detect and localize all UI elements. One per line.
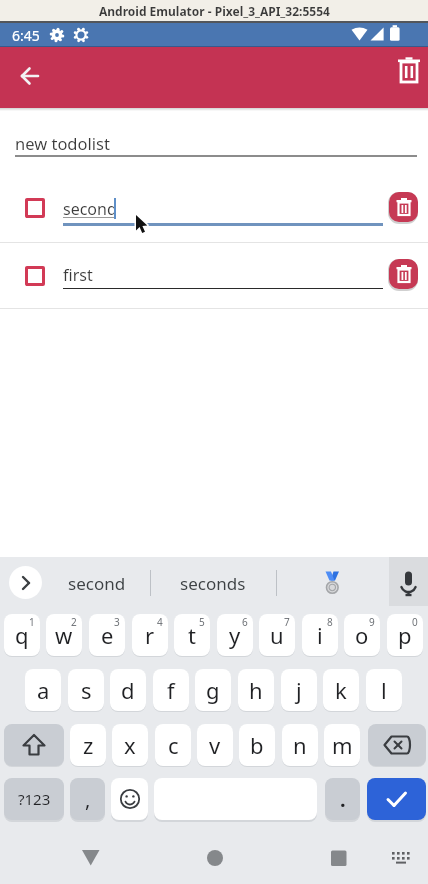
button[interactable]: j (281, 669, 317, 711)
button[interactable]: v (197, 724, 233, 766)
button[interactable]: u (259, 614, 295, 656)
staticText: e (101, 620, 114, 650)
button[interactable] (367, 778, 426, 820)
button[interactable]: l (366, 669, 402, 711)
staticText: ?123 (18, 789, 51, 809)
staticText: . (340, 786, 346, 813)
staticText: i (317, 620, 323, 650)
button[interactable] (389, 192, 418, 222)
staticText: a (37, 675, 50, 705)
staticText: seconds (180, 572, 246, 595)
staticText: u (270, 620, 284, 650)
staticText: t (188, 620, 196, 650)
staticText: second (63, 198, 117, 220)
button[interactable]: k (323, 669, 359, 711)
staticText: q (15, 620, 29, 650)
staticText: 3 (114, 615, 120, 629)
staticText: first (63, 264, 93, 286)
staticText: b (250, 730, 264, 760)
button[interactable] (395, 56, 423, 84)
staticText: 6:45 (12, 26, 40, 45)
staticText: z (83, 730, 94, 760)
staticText: m (332, 730, 353, 760)
button[interactable]: . (325, 778, 360, 820)
staticText: 2 (71, 615, 77, 629)
staticText: v (209, 730, 221, 760)
button[interactable] (398, 568, 419, 596)
button[interactable]: w (46, 614, 82, 656)
button[interactable]: e (89, 614, 125, 656)
staticText: o (355, 620, 369, 650)
staticText: x (124, 730, 136, 760)
button[interactable] (75, 842, 107, 874)
staticText: g (206, 675, 220, 705)
staticText: j (296, 675, 302, 705)
button[interactable]: f (153, 669, 189, 711)
button[interactable]: x (112, 724, 148, 766)
staticText: Android Emulator - Pixel_3_API_32:5554 (99, 3, 330, 19)
staticText: d (121, 675, 135, 705)
button[interactable]: , (70, 778, 105, 820)
staticText: w (55, 620, 73, 650)
staticText: r (145, 620, 155, 650)
button[interactable]: z (70, 724, 106, 766)
staticText: y (229, 620, 241, 650)
button[interactable] (199, 842, 231, 874)
button[interactable]: i (302, 614, 338, 656)
staticText: 0 (412, 615, 418, 629)
button[interactable]: y (217, 614, 253, 656)
button[interactable] (9, 566, 42, 599)
staticText: 5 (199, 615, 205, 629)
button[interactable] (4, 724, 64, 766)
staticText: 7 (284, 615, 290, 629)
button[interactable] (25, 266, 45, 286)
button[interactable]: d (110, 669, 146, 711)
button[interactable]: n (282, 724, 318, 766)
button[interactable] (25, 198, 45, 218)
staticText: h (249, 675, 263, 705)
staticText: , (85, 786, 91, 813)
button[interactable] (387, 845, 415, 871)
button[interactable]: c (155, 724, 191, 766)
button[interactable] (389, 259, 418, 289)
button[interactable]: p (387, 614, 423, 656)
staticText: second (68, 572, 126, 595)
button[interactable]: t (174, 614, 210, 656)
button[interactable]: q (4, 614, 40, 656)
button[interactable] (13, 60, 45, 92)
button[interactable] (111, 778, 148, 820)
staticText: 9 (369, 615, 375, 629)
staticText: 1 (29, 615, 35, 629)
button[interactable] (368, 724, 426, 766)
button[interactable]: h (238, 669, 274, 711)
button[interactable]: ?123 (4, 778, 64, 820)
staticText: 4 (157, 615, 163, 629)
button[interactable]: r (132, 614, 168, 656)
button[interactable]: m (324, 724, 360, 766)
button[interactable]: g (195, 669, 231, 711)
staticText: c (168, 730, 179, 760)
staticText: k (335, 675, 347, 705)
button[interactable]: o (344, 614, 380, 656)
staticText: l (381, 675, 387, 705)
button[interactable]: s (68, 669, 104, 711)
button[interactable]: a (25, 669, 61, 711)
staticText: p (398, 620, 412, 650)
staticText: new todolist (15, 132, 110, 154)
staticText: f (167, 675, 175, 705)
button[interactable] (322, 568, 344, 596)
button[interactable]: b (239, 724, 275, 766)
staticText: 6 (242, 615, 248, 629)
staticText: 8 (327, 615, 333, 629)
staticText: s (81, 675, 92, 705)
button[interactable] (323, 842, 355, 874)
staticText: n (293, 730, 307, 760)
